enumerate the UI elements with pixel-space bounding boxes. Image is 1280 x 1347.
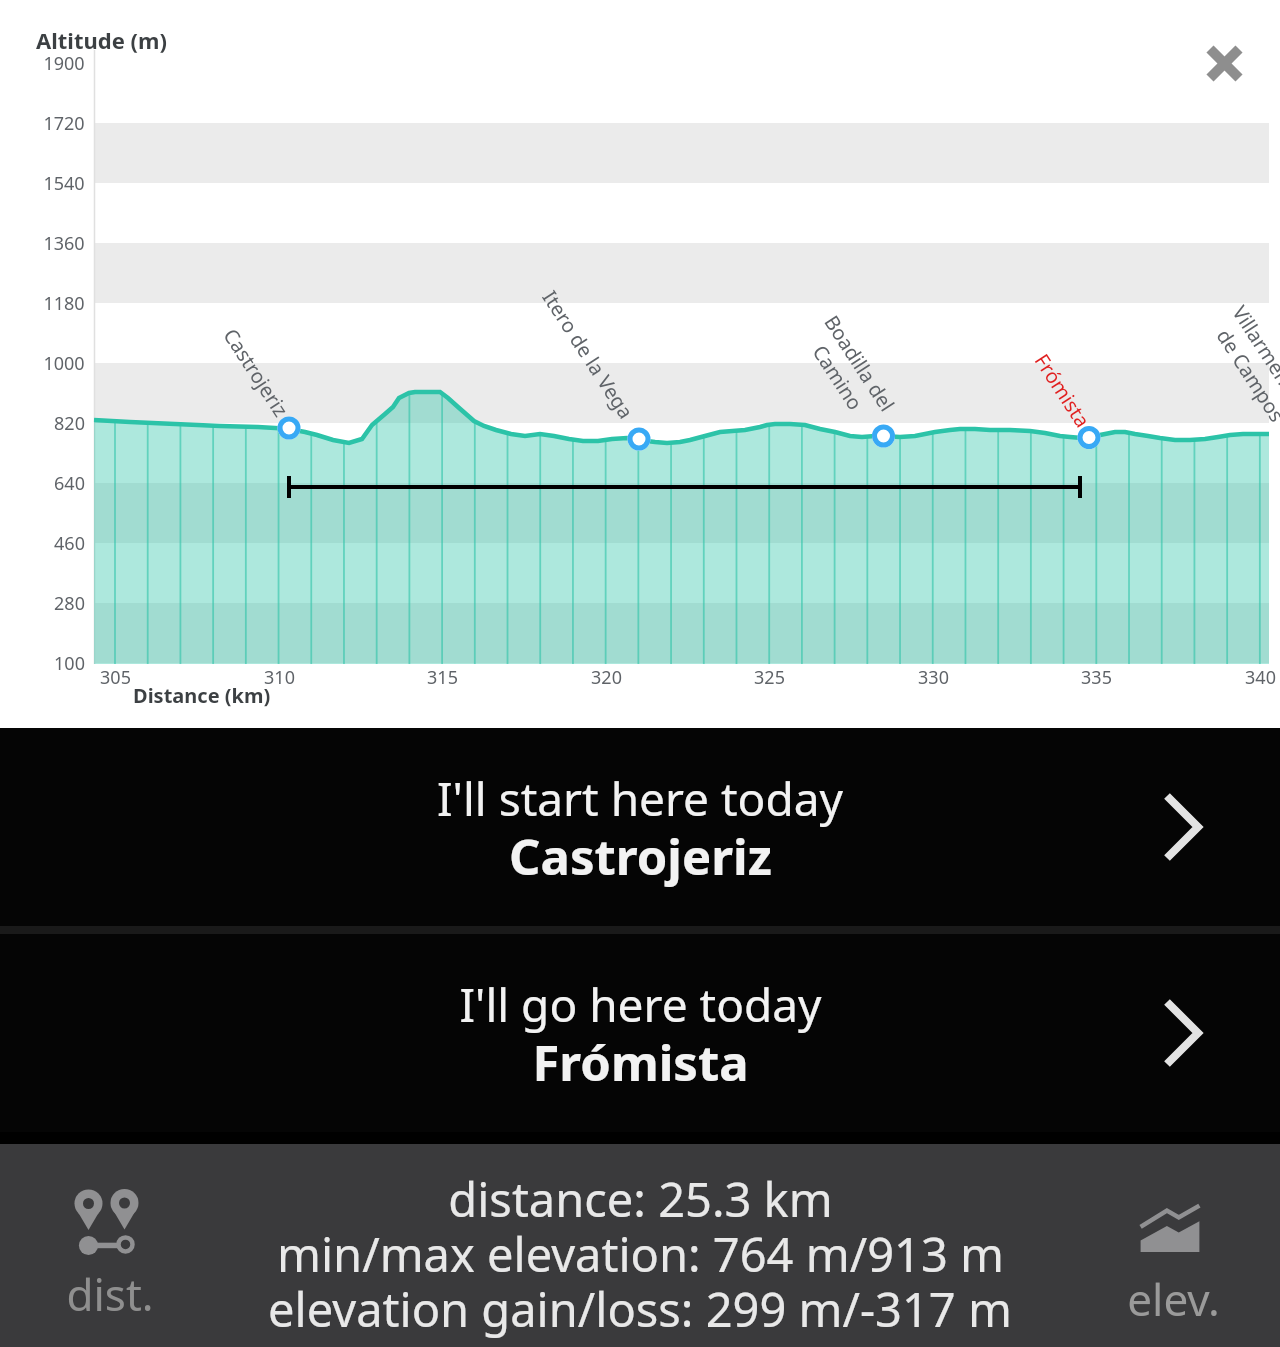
staticText: dist.: [66, 1264, 154, 1324]
staticText: 280: [54, 591, 85, 616]
staticText: I'll go here today: [459, 973, 822, 1036]
staticText: 460: [54, 531, 85, 556]
staticText: Boadilla del Camino: [797, 310, 901, 430]
staticText: Itero de la Vega: [536, 285, 640, 424]
staticText: 305: [100, 665, 131, 690]
staticText: Distance (km): [133, 682, 271, 709]
staticText: 1180: [43, 291, 85, 316]
staticText: Altitude (m): [36, 25, 167, 55]
staticText: 315: [427, 665, 458, 690]
staticText: 310: [264, 665, 295, 690]
staticText: Castrojeriz: [217, 323, 294, 422]
staticText: 325: [754, 665, 785, 690]
staticText: min/max elevation: 764 m/913 m: [277, 1222, 1004, 1286]
staticText: distance: 25.3 km: [448, 1167, 833, 1231]
staticText: 1540: [43, 171, 85, 196]
staticText: Frómista: [1029, 348, 1096, 433]
staticText: 1360: [43, 231, 85, 256]
staticText: 1000: [43, 351, 85, 376]
staticText: 820: [54, 411, 85, 436]
staticText: elev.: [1127, 1269, 1220, 1329]
staticText: 640: [54, 471, 85, 496]
staticText: 335: [1081, 665, 1112, 690]
button[interactable]: I'll start here today: [0, 728, 1280, 926]
button[interactable]: I'll go here today: [0, 934, 1280, 1132]
staticText: elevation gain/loss: 299 m/-317 m: [268, 1277, 1012, 1341]
staticText: 330: [918, 665, 949, 690]
staticText: Castrojeriz: [509, 823, 772, 890]
button[interactable]: dist.: [40, 1174, 180, 1334]
staticText: 320: [591, 665, 622, 690]
staticText: Villarmentero de Campos: [1205, 300, 1280, 436]
staticText: 1900: [43, 51, 85, 76]
staticText: 100: [54, 651, 85, 676]
button[interactable]: elev.: [1108, 1184, 1238, 1334]
button[interactable]: [1194, 33, 1254, 93]
staticText: 1720: [43, 111, 85, 136]
staticText: I'll start here today: [437, 767, 843, 830]
staticText: 340: [1245, 665, 1276, 690]
staticText: Frómista: [532, 1029, 749, 1096]
